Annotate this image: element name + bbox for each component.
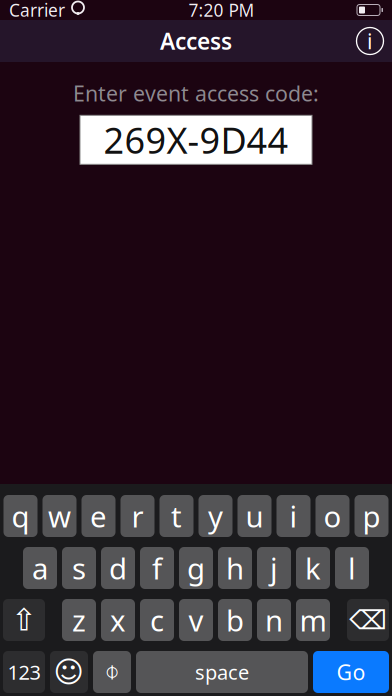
button[interactable]: x [101,599,135,641]
staticText: c [150,600,164,639]
button[interactable]: q [3,495,37,537]
staticText: j [270,548,278,587]
button[interactable]: Delete [347,599,389,641]
staticText: o [323,496,341,535]
button[interactable]: h [218,547,252,589]
staticText: l [348,548,356,587]
staticText: e [90,496,107,535]
button[interactable]: k [296,547,330,589]
staticText: ⌫ [349,605,387,635]
staticText: r [131,496,143,535]
button[interactable]: d [101,547,135,589]
button[interactable]: w [42,495,76,537]
staticText: i [367,27,373,55]
button[interactable]: 123 [3,651,45,693]
button[interactable]: t [159,495,193,537]
staticText: b [226,600,244,639]
staticText: Access [160,26,232,56]
button[interactable]: space [136,651,308,693]
button[interactable]: e [81,495,115,537]
button[interactable]: Emoji [50,651,88,693]
button[interactable]: Dictate [93,651,131,693]
staticText: 123 [7,659,40,685]
button[interactable]: y [198,495,232,537]
staticText: p [362,496,380,535]
staticText: y [208,496,223,535]
staticText: 269X-9D44 [103,116,288,164]
button[interactable]: r [120,495,154,537]
button[interactable]: u [237,495,271,537]
staticText: v [188,600,203,639]
button[interactable]: g [179,547,213,589]
staticText: 7:20 PM [188,0,254,21]
button[interactable]: l [335,547,369,589]
staticText: a [32,548,48,587]
staticText: i [289,496,297,535]
staticText: g [187,548,205,587]
staticText: Carrier [9,0,65,21]
button[interactable]: s [62,547,96,589]
staticText: q [11,496,29,535]
button[interactable]: b [218,599,252,641]
staticText: m [299,600,326,639]
staticText: t [171,496,182,535]
button[interactable]: n [257,599,291,641]
staticText: u [245,496,263,535]
button[interactable]: a [23,547,57,589]
button[interactable]: v [179,599,213,641]
button[interactable]: 269X-9D44 [80,115,312,164]
staticText: w [48,496,71,535]
staticText: space [195,659,249,685]
button[interactable]: o [315,495,349,537]
staticText: f [152,548,162,587]
staticText: x [110,600,126,639]
button[interactable]: Shift [3,599,45,641]
staticText: Enter event access code: [73,79,319,107]
staticText: k [305,548,321,587]
staticText: ☺ [53,655,84,689]
staticText: d [109,548,127,587]
button[interactable]: c [140,599,174,641]
staticText: ⌽ [104,660,119,684]
button[interactable]: p [354,495,388,537]
staticText: n [265,600,283,639]
button[interactable]: z [62,599,96,641]
button[interactable]: f [140,547,174,589]
button[interactable]: j [257,547,291,589]
staticText: s [72,548,86,587]
button[interactable]: Go [313,651,389,693]
staticText: z [72,600,86,639]
staticText: h [226,548,244,587]
button[interactable]: m [296,599,330,641]
staticText: ⇧ [11,603,37,637]
button[interactable]: i [276,495,310,537]
button[interactable]: Information [348,20,392,62]
staticText: Go [336,658,365,686]
